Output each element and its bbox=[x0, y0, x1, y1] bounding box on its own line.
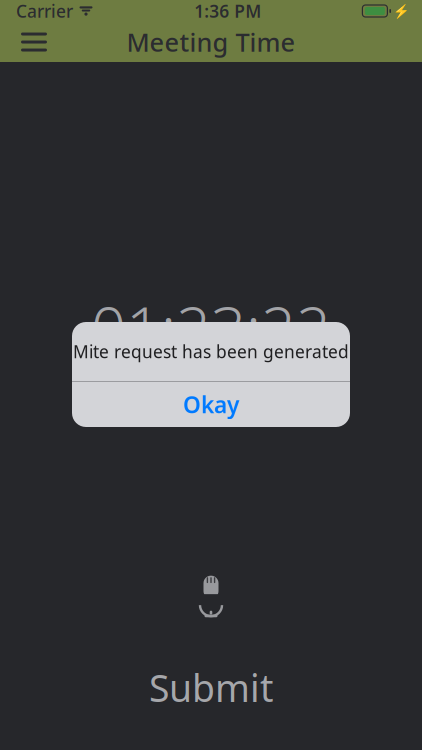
button[interactable]: Submit bbox=[0, 665, 422, 709]
button[interactable]: Menu bbox=[8, 22, 60, 62]
staticText: Submit bbox=[149, 663, 273, 712]
staticText: Meeting Time bbox=[126, 25, 295, 59]
staticText: 1:36 PM bbox=[194, 0, 261, 22]
staticText: 01:23:22 bbox=[91, 286, 331, 367]
staticText: Carrier bbox=[16, 0, 73, 22]
staticText: Mite request has been generated bbox=[73, 340, 349, 363]
button[interactable]: Okay bbox=[72, 382, 350, 427]
staticText: ⚡ bbox=[393, 3, 410, 19]
staticText: Okay bbox=[183, 389, 239, 419]
